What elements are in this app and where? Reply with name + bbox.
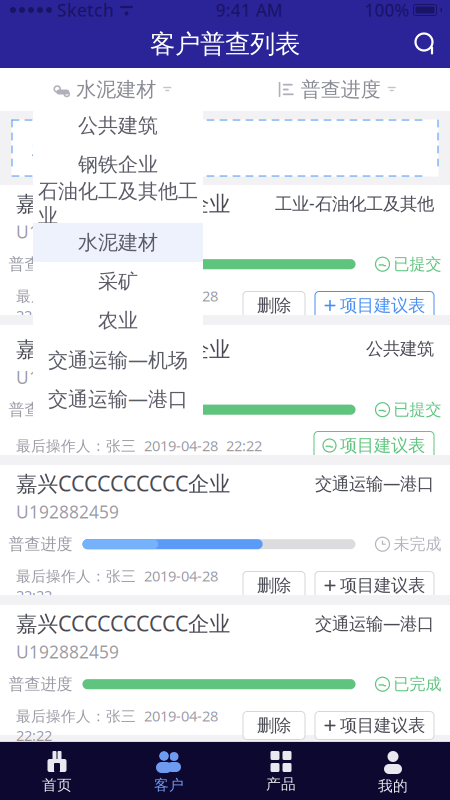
staticText: 嘉兴CCCCCCCCCC企业	[16, 334, 230, 363]
staticText: 水泥建材	[76, 77, 156, 102]
button[interactable]: 删除	[243, 291, 305, 319]
button[interactable]: 项目建议表	[315, 711, 434, 739]
button[interactable]: 首页	[1, 742, 113, 800]
button[interactable]: 删除	[243, 571, 305, 599]
staticText: 已完成	[393, 674, 441, 694]
button[interactable]: 采矿	[33, 262, 203, 301]
button[interactable]: 钢铁企业	[33, 145, 203, 184]
staticText: 最后操作人：张三 2019-04-28 22:22	[16, 436, 262, 455]
button[interactable]: 项目建议表	[315, 571, 434, 599]
staticText: U192882459	[16, 220, 119, 243]
staticText: 交通运输—港口	[48, 385, 188, 412]
staticText: 删除	[257, 715, 291, 736]
staticText: 钢铁企业	[78, 152, 158, 177]
staticText: Sketch	[57, 0, 114, 21]
staticText: 最后操作人：张三 2019-04-28 22:22	[16, 706, 222, 745]
staticText: U192882459	[16, 640, 119, 663]
staticText: 项目建议表	[340, 575, 425, 596]
button[interactable]: 删除	[243, 711, 305, 739]
staticText: 石油化工及其他工业	[38, 179, 198, 228]
staticText: 交通运输—港口	[315, 612, 434, 635]
button[interactable]: 农业	[33, 301, 203, 340]
staticText: 首页	[42, 776, 72, 794]
staticText: 工业-石油化工及其他	[275, 192, 434, 215]
staticText: 已提交	[393, 254, 441, 274]
staticText: 已提交	[393, 400, 441, 419]
staticText: 项目建议表	[340, 435, 425, 456]
staticText: 最后操作人：张三 2019-04-28 22:22	[16, 566, 222, 605]
staticText: 删除	[257, 575, 291, 596]
button[interactable]: 水泥建材	[47, 68, 178, 110]
button[interactable]: 新增客户	[11, 119, 438, 176]
staticText: 公共建筑	[366, 338, 434, 359]
staticText: 采矿	[98, 269, 138, 294]
staticText: 100%	[364, 0, 409, 21]
staticText: 交通运输—机场	[48, 346, 188, 373]
staticText: 客户	[154, 776, 184, 794]
button[interactable]: 石油化工及其他工业	[33, 184, 203, 223]
staticText: U192882459	[16, 500, 119, 523]
staticText: 普查进度	[8, 674, 72, 694]
staticText: 未完成	[393, 534, 441, 554]
button[interactable]: Search	[402, 20, 450, 68]
button[interactable]: 普查进度	[273, 68, 403, 110]
staticText: 产品	[266, 775, 296, 793]
staticText: 普查进度	[8, 534, 72, 554]
staticText: 客户普查列表	[150, 28, 300, 59]
button[interactable]: 项目建议表	[314, 431, 434, 459]
staticText: 我的	[378, 777, 408, 795]
button[interactable]: 我的	[337, 742, 449, 800]
button[interactable]: 产品	[225, 742, 337, 800]
staticText: 公共建筑	[78, 113, 158, 138]
staticText: 嘉兴CCCCCCCCCC企业	[16, 189, 230, 217]
button[interactable]: 交通运输—港口	[33, 379, 203, 418]
staticText: 嘉兴CCCCCCCCCC企业	[16, 469, 230, 497]
staticText: 水泥建材	[78, 230, 158, 255]
button[interactable]: 公共建筑	[33, 106, 203, 145]
button[interactable]: 客户	[113, 742, 225, 800]
staticText: 9:41 AM	[216, 0, 283, 21]
staticText: 嘉兴CCCCCCCCCC企业	[16, 609, 230, 637]
staticText: 项目建议表	[340, 715, 425, 736]
staticText: 普查进度	[8, 254, 72, 274]
staticText: U192882459	[16, 366, 119, 389]
staticText: 新增客户	[31, 136, 111, 160]
button[interactable]: 水泥建材	[33, 223, 203, 262]
staticText: 删除	[257, 295, 291, 316]
staticText: 普查进度	[8, 400, 72, 419]
staticText: 项目建议表	[340, 295, 425, 316]
button[interactable]: 项目建议表	[315, 291, 434, 319]
staticText: 普查进度	[301, 77, 381, 102]
staticText: 农业	[98, 308, 138, 333]
staticText: 最后操作人：张三 2019-04-28 22:22	[16, 286, 222, 325]
button[interactable]: 交通运输—机场	[33, 340, 203, 379]
staticText: 交通运输—港口	[315, 472, 434, 495]
